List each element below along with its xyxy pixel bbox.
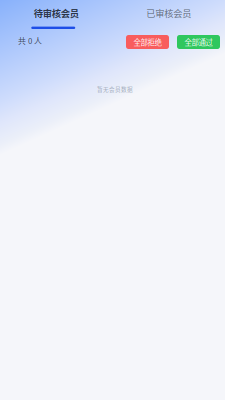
staticText: 全部通过 — [184, 37, 212, 47]
button[interactable]: 全部通过 — [177, 35, 220, 49]
button[interactable]: 待审核会员 — [0, 0, 112, 29]
staticText: 待审核会员 — [34, 6, 79, 20]
button[interactable]: 全部拒绝 — [126, 35, 169, 49]
staticText: 已审核会员 — [146, 6, 191, 20]
staticText: 全部拒绝 — [133, 37, 161, 47]
staticText: 暂无会员数据 — [97, 85, 133, 93]
button[interactable]: 已审核会员 — [112, 0, 225, 29]
staticText: 共 0 人 — [18, 35, 42, 46]
